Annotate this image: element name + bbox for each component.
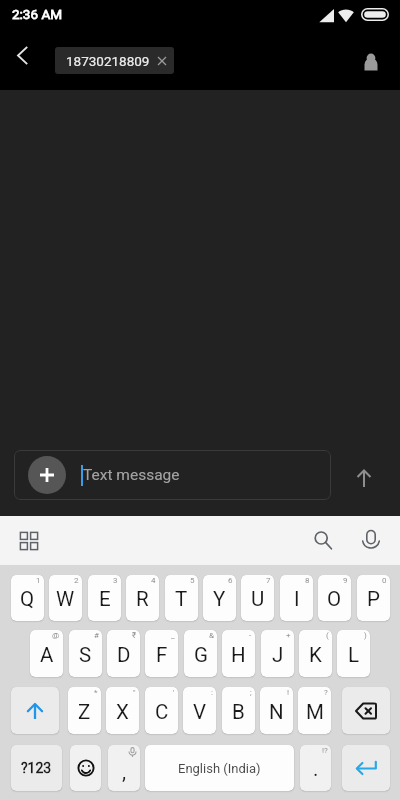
button[interactable]: @ <box>30 630 63 677</box>
staticText: 7 <box>266 576 271 585</box>
staticText: !? <box>322 746 328 755</box>
button[interactable]: Send <box>345 459 383 497</box>
staticText: . <box>313 757 319 781</box>
staticText: 9 <box>343 576 348 585</box>
button[interactable]: 3 <box>88 575 121 621</box>
button[interactable]: ₹ <box>107 630 140 677</box>
staticText: N <box>269 700 284 724</box>
staticText: P <box>367 587 380 611</box>
button[interactable]: ( <box>299 630 332 677</box>
staticText: C <box>155 700 169 724</box>
button[interactable]: !? <box>300 745 331 791</box>
staticText: ; <box>250 688 252 697</box>
button[interactable]: ?123 <box>11 745 62 791</box>
staticText: 5 <box>190 576 195 585</box>
staticText: ! <box>287 688 290 697</box>
staticText: D <box>117 643 131 667</box>
staticText: A <box>40 643 54 667</box>
button[interactable]: # <box>69 630 102 677</box>
staticText: S <box>79 643 92 667</box>
staticText: R <box>136 587 149 611</box>
staticText: 0 <box>382 576 387 585</box>
staticText: W <box>56 587 75 611</box>
button[interactable]: ! <box>260 687 293 734</box>
staticText: I <box>294 587 300 611</box>
staticText: 2:36 AM <box>12 6 62 22</box>
staticText: ₹ <box>132 631 137 640</box>
staticText: + <box>286 631 291 640</box>
staticText: X <box>116 700 129 724</box>
staticText: K <box>309 643 322 667</box>
staticText: U <box>251 587 265 611</box>
button[interactable]: 2 <box>49 575 82 621</box>
staticText: H <box>231 643 246 667</box>
staticText: 8 <box>305 576 310 585</box>
button[interactable]: Search <box>304 521 342 559</box>
staticText: Text message <box>83 466 180 484</box>
button[interactable]: Back <box>2 35 42 75</box>
button[interactable]: * <box>68 687 101 734</box>
button[interactable]: 8 <box>280 575 313 621</box>
button[interactable]: Shift <box>11 687 59 734</box>
staticText: ( <box>326 631 329 640</box>
staticText: : <box>211 688 213 697</box>
staticText: @ <box>52 631 60 640</box>
button[interactable]: ? <box>298 687 331 734</box>
staticText: English (India) <box>178 761 261 776</box>
button[interactable]: ) <box>337 630 370 677</box>
button[interactable]: & <box>184 630 217 677</box>
staticText: Q <box>20 587 35 611</box>
button[interactable]: + <box>261 630 294 677</box>
staticText: ) <box>364 631 367 640</box>
staticText: Z <box>78 700 91 724</box>
staticText: ?123 <box>21 760 52 776</box>
button[interactable]: 6 <box>203 575 236 621</box>
button[interactable]: Add attachment <box>14 450 331 500</box>
staticText: " <box>133 688 136 697</box>
staticText: # <box>94 631 99 640</box>
staticText: - <box>249 631 252 640</box>
staticText: 6 <box>228 576 233 585</box>
button[interactable]: Emoji <box>70 745 101 791</box>
staticText: _ <box>171 631 175 640</box>
button[interactable]: " <box>106 687 139 734</box>
staticText: M <box>306 700 324 724</box>
button[interactable]: 9 <box>318 575 351 621</box>
staticText: 3 <box>113 576 118 585</box>
button[interactable]: : <box>183 687 216 734</box>
button[interactable]: 5 <box>165 575 198 621</box>
staticText: ? <box>324 688 328 697</box>
staticText: J <box>272 643 284 667</box>
button[interactable]: _ <box>145 630 178 677</box>
staticText: O <box>327 587 342 611</box>
button[interactable]: Voice input <box>352 521 390 559</box>
button[interactable]: 0 <box>357 575 390 621</box>
staticText: & <box>209 631 214 640</box>
staticText: T <box>175 587 188 611</box>
staticText: L <box>348 643 360 667</box>
button[interactable]: - <box>222 630 255 677</box>
button[interactable]: 18730218809 <box>55 47 174 74</box>
staticText: B <box>232 700 245 724</box>
staticText: Y <box>213 587 226 611</box>
button[interactable]: 4 <box>126 575 159 621</box>
button[interactable]: 1 <box>11 575 44 621</box>
button[interactable]: Backspace <box>342 687 390 734</box>
button[interactable]: Apps <box>10 522 48 560</box>
staticText: 1 <box>36 576 41 585</box>
button[interactable]: English (India) <box>145 745 294 791</box>
button[interactable]: Contact details <box>351 42 391 82</box>
button[interactable]: ; <box>222 687 255 734</box>
staticText: 2 <box>74 576 79 585</box>
staticText: * <box>94 688 98 697</box>
staticText: E <box>99 587 111 611</box>
button[interactable]: Comma, voice input <box>108 745 140 791</box>
staticText: G <box>194 643 208 667</box>
button[interactable]: 7 <box>241 575 274 621</box>
button[interactable]: Enter <box>342 745 390 791</box>
button[interactable]: Add attachment <box>28 456 66 494</box>
staticText: 4 <box>151 576 156 585</box>
staticText: ' <box>173 688 175 697</box>
button[interactable]: ' <box>145 687 178 734</box>
staticText: F <box>156 643 168 667</box>
